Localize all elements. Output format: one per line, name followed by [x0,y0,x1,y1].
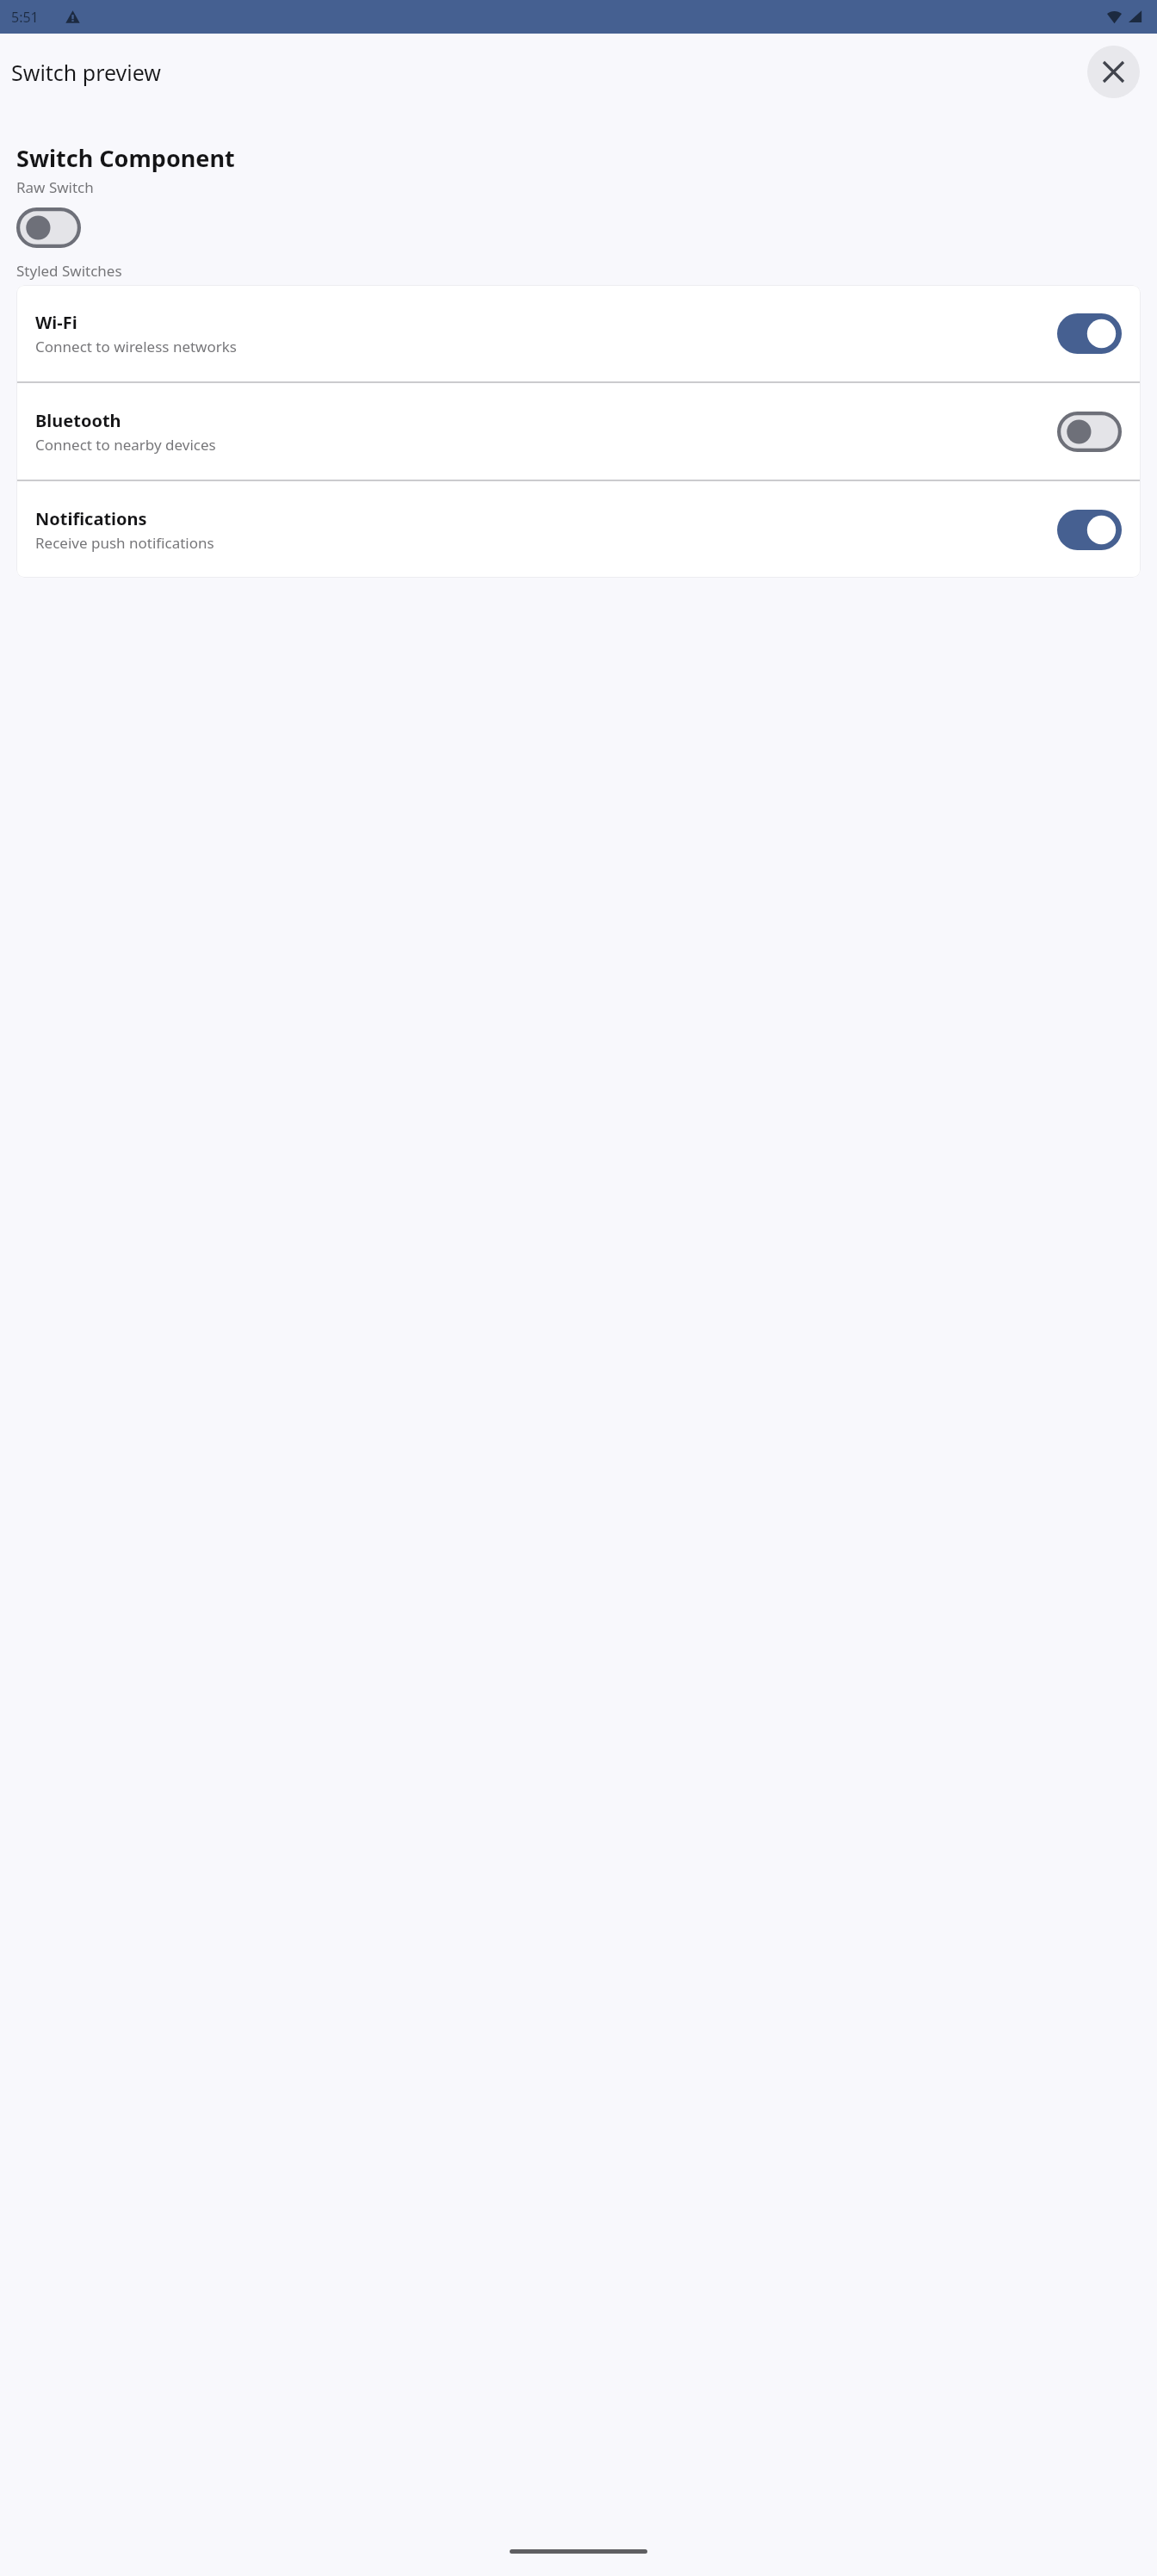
button[interactable]: Bluetooth [16,383,1141,480]
button[interactable]: Wi-Fi [16,285,1141,381]
staticText: Connect to wireless networks [35,337,238,356]
button[interactable]: Close [1087,46,1140,98]
button[interactable]: Notifications toggle [1057,510,1122,550]
button[interactable]: Bluetooth toggle [1057,412,1122,452]
button[interactable]: Notifications [16,481,1141,578]
staticText: Switch preview [11,58,162,87]
button[interactable]: Wi-Fi toggle [1057,313,1122,354]
staticText: Bluetooth [35,409,121,432]
staticText: Receive push notifications [35,533,214,553]
staticText: Notifications [35,507,147,530]
staticText: Styled Switches [16,261,122,281]
button[interactable]: Raw switch toggle [16,207,81,248]
staticText: Switch Component [16,142,235,174]
staticText: 5:51 [11,8,39,27]
staticText: Raw Switch [16,177,94,197]
staticText: Wi-Fi [35,311,77,334]
staticText: Connect to nearby devices [35,435,216,455]
